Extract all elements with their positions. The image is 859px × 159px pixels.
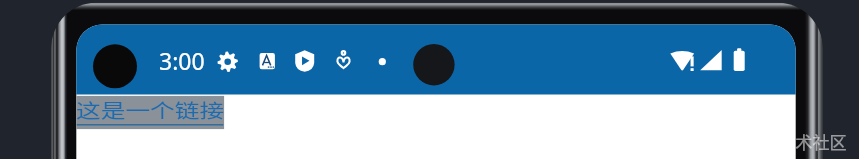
button[interactable] — [76, 96, 224, 129]
staticText: 3:00 — [159, 45, 205, 76]
staticText: @稀土掘金技术社区 — [693, 129, 847, 154]
staticText: 这是一个链接 — [76, 96, 225, 124]
